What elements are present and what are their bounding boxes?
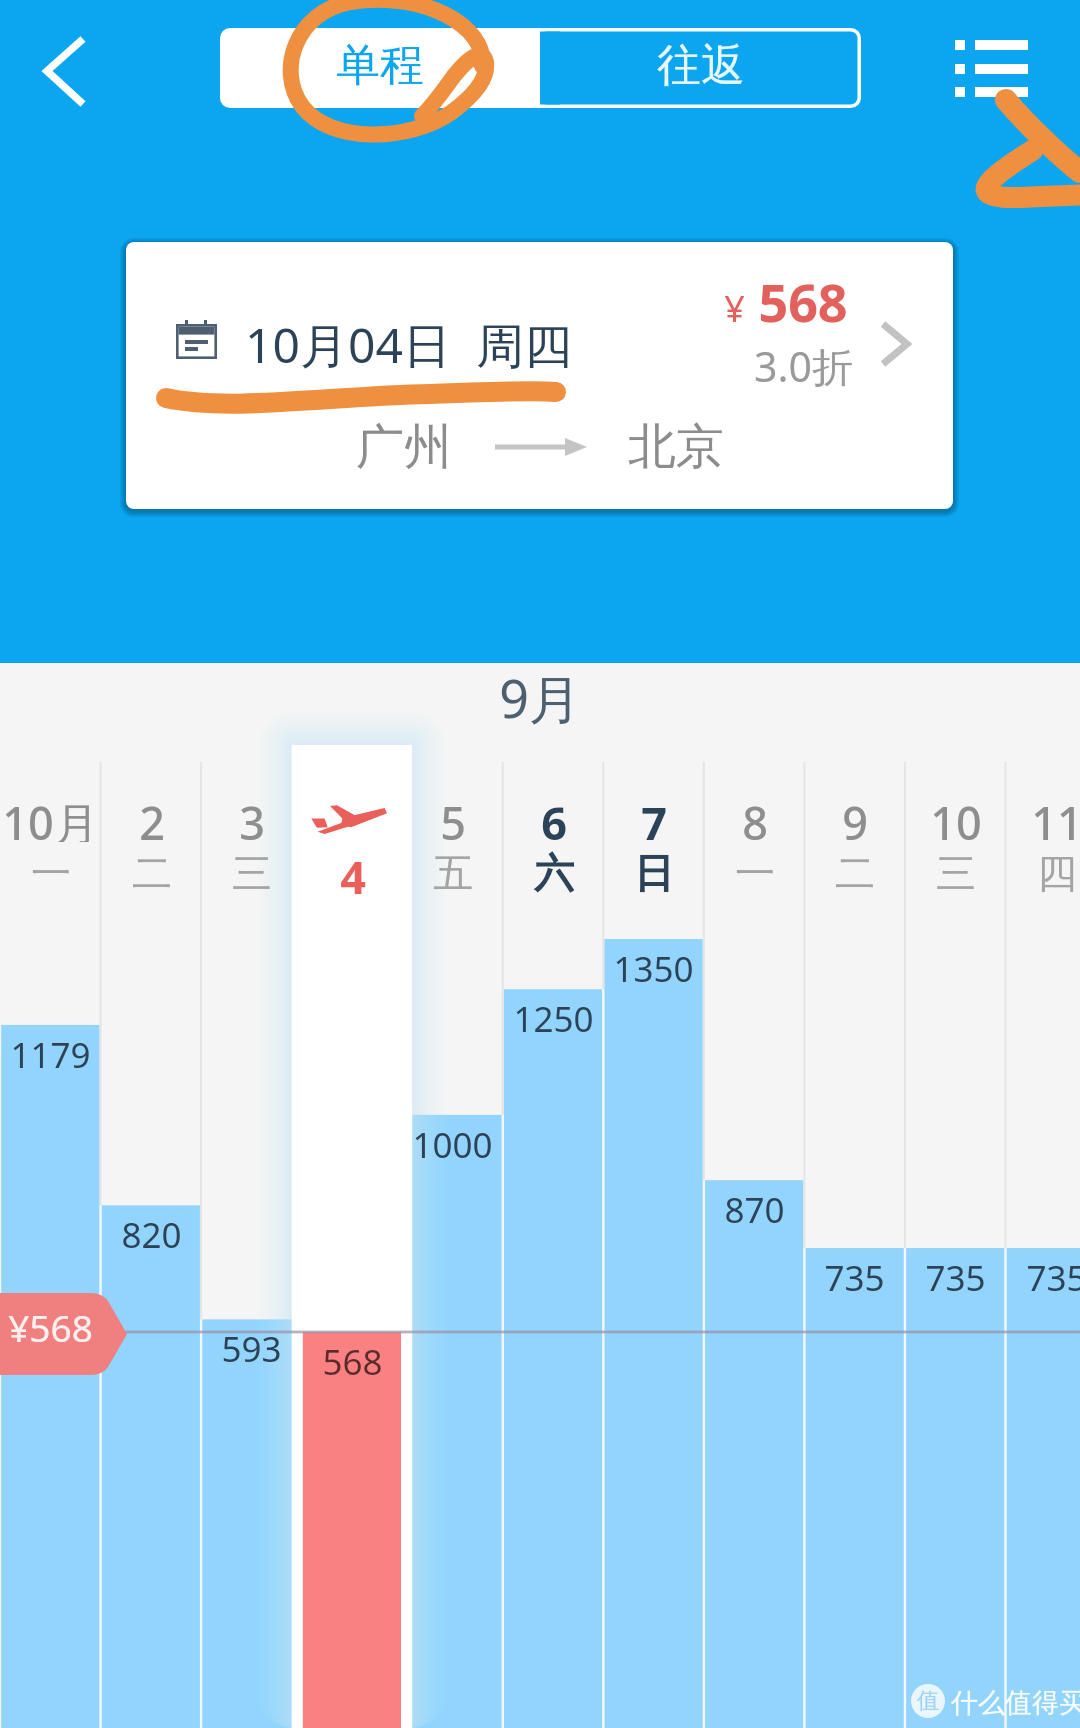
staticText: 593 [221,1325,282,1367]
staticText: 日 [634,848,674,898]
staticText: 735 [824,1254,885,1296]
staticText: 10 [930,792,982,842]
staticText: 三 [936,848,976,898]
button[interactable]: 7 [603,762,704,1728]
staticText: 7 [641,792,667,842]
staticText: 四 [1037,848,1077,898]
staticText: 10月04日 周四 [245,312,572,378]
staticText: 1179 [10,1031,91,1073]
staticText: 3.0折 [754,338,853,394]
staticText: 广州 [356,417,452,477]
staticText: ¥568 [8,1302,93,1352]
staticText: 8 [742,792,768,842]
staticText: 三 [232,848,272,898]
staticText: 568 [758,266,848,337]
staticText: 值 [917,1687,939,1715]
staticText: 5 [440,792,466,842]
button[interactable]: 5 [402,762,503,1728]
staticText: 4 [340,846,366,896]
button[interactable]: 3 [201,762,302,1728]
staticText: 1250 [513,995,594,1037]
staticText: 五 [433,848,473,898]
staticText: 什么值得买 [951,1686,1080,1720]
staticText: 735 [1026,1254,1080,1296]
staticText: 一 [735,848,775,898]
staticText: 一 [31,848,71,898]
button[interactable]: 4 [302,762,403,1728]
button[interactable]: 11 [1006,762,1080,1728]
staticText: ¥ [724,284,745,333]
button[interactable]: List [925,8,1065,128]
staticText: 9月 [499,662,581,730]
staticText: 1350 [613,945,694,987]
button[interactable]: 9 [804,762,905,1728]
staticText: 870 [724,1186,785,1228]
staticText: 单程 [336,38,424,93]
button[interactable]: Back [10,14,120,124]
staticText: 二 [132,848,172,898]
staticText: 2 [139,792,165,842]
staticText: 735 [925,1254,986,1296]
button[interactable]: 8 [704,762,805,1728]
button[interactable]: 6 [503,762,604,1728]
button[interactable]: 10月 [0,762,101,1728]
staticText: 568 [322,1338,383,1380]
staticText: 1000 [412,1121,493,1163]
staticText: 二 [835,848,875,898]
button[interactable]: 往返 [540,28,861,108]
staticText: 3 [239,792,265,842]
staticText: 北京 [628,417,724,477]
button[interactable]: 10月04日 周四 [126,242,953,509]
button[interactable]: 10 [905,762,1006,1728]
staticText: 9 [842,792,868,842]
staticText: 6 [541,792,567,842]
button[interactable]: 2 [101,762,202,1728]
staticText: 往返 [657,38,745,93]
staticText: 820 [121,1211,182,1253]
staticText: 10月 [2,792,99,842]
button[interactable]: 单程 [220,28,540,108]
staticText: 六 [534,848,574,898]
staticText: 11 [1031,792,1080,842]
